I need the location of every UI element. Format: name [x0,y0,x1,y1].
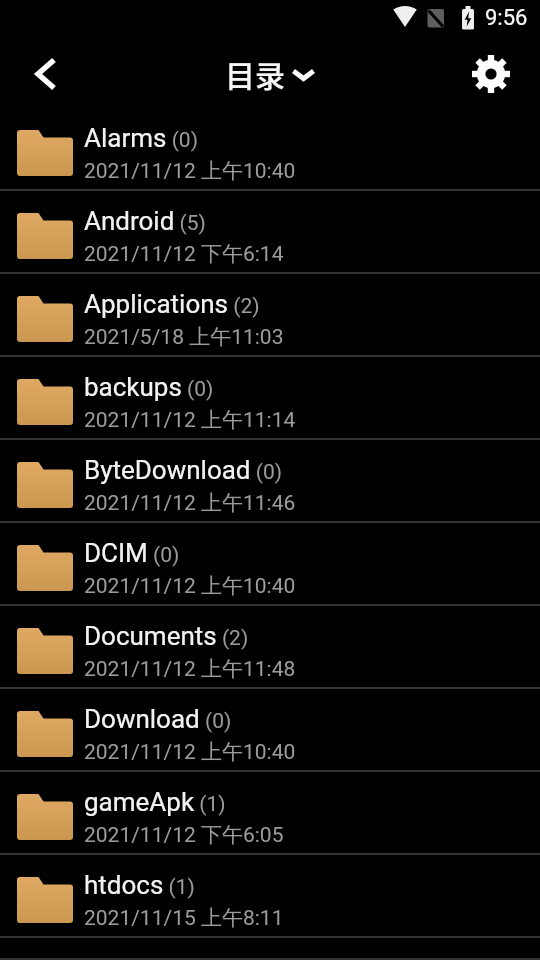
staticText: Documents (2) [84,621,249,651]
staticText: Android (5) [84,206,206,236]
staticText: 2021/11/12 上午11:14 [84,407,296,433]
staticText: 2021/11/12 上午11:46 [84,490,296,516]
staticText: 9:56 [485,5,528,31]
button[interactable]: 目录 [225,52,315,95]
button[interactable]: DCIM (0) [0,523,540,606]
staticText: 目录 [225,52,285,95]
staticText: Download (0) [84,704,232,734]
staticText: kuaishou (1) [84,953,221,960]
staticText: Applications (2) [84,289,260,319]
button[interactable]: backups (0) [0,357,540,440]
button[interactable]: Applications (2) [0,274,540,357]
button[interactable] [467,50,515,98]
staticText: 2021/11/12 上午10:40 [84,739,296,765]
button[interactable]: gameApk (1) [0,772,540,855]
button[interactable]: Documents (2) [0,606,540,689]
staticText: 2021/11/12 下午6:14 [84,241,284,267]
staticText: gameApk (1) [84,787,226,817]
staticText: 2021/11/12 上午11:48 [84,656,296,682]
staticText: 2021/5/18 上午11:03 [84,324,284,350]
staticText: htdocs (1) [84,870,195,900]
button[interactable]: Android (5) [0,191,540,274]
staticText: ByteDownload (0) [84,455,283,485]
staticText: 2021/11/12 下午6:05 [84,822,284,848]
staticText: 2021/11/15 上午8:11 [84,905,284,931]
button[interactable]: kuaishou (1) [0,938,540,960]
button[interactable] [22,50,70,98]
staticText: backups (0) [84,372,214,402]
staticText: DCIM (0) [84,538,180,568]
button[interactable]: ByteDownload (0) [0,440,540,523]
button[interactable]: Download (0) [0,689,540,772]
button[interactable]: Alarms (0) [0,108,540,191]
staticText: 2021/11/12 上午10:40 [84,573,296,599]
staticText: Alarms (0) [84,123,198,153]
button[interactable]: htdocs (1) [0,855,540,938]
staticText: 2021/11/12 上午10:40 [84,158,296,184]
